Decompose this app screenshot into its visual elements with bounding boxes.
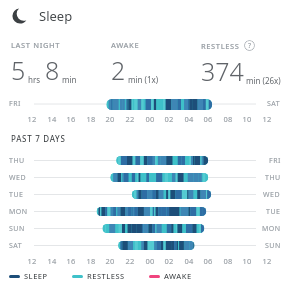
staticText: 2 bbox=[111, 53, 126, 87]
button[interactable]: SAT bbox=[0, 237, 290, 254]
staticText: FRI bbox=[269, 156, 281, 166]
staticText: TUE bbox=[9, 190, 24, 200]
staticText: 08 bbox=[223, 256, 233, 266]
staticText: 20 bbox=[105, 114, 115, 124]
staticText: 5 bbox=[11, 53, 26, 87]
staticText: AWAKE bbox=[111, 40, 140, 50]
staticText: 10 bbox=[242, 114, 252, 124]
button[interactable]: WED bbox=[0, 169, 290, 186]
staticText: 8 bbox=[45, 53, 60, 87]
staticText: 22 bbox=[125, 256, 135, 266]
button[interactable]: SLEEP bbox=[9, 271, 48, 281]
staticText: TUE bbox=[266, 207, 281, 217]
staticText: min (26x) bbox=[246, 75, 281, 86]
staticText: min bbox=[62, 74, 77, 85]
button[interactable]: FRI bbox=[0, 96, 290, 112]
staticText: 16 bbox=[66, 256, 76, 266]
button[interactable]: Sleep bbox=[0, 0, 290, 32]
staticText: 10 bbox=[242, 256, 252, 266]
staticText: PAST 7 DAYS bbox=[11, 133, 66, 144]
button[interactable]: THU bbox=[0, 152, 290, 169]
staticText: 08 bbox=[223, 114, 233, 124]
staticText: min (1x) bbox=[128, 74, 159, 85]
staticText: 00 bbox=[145, 114, 155, 124]
staticText: 374 bbox=[201, 54, 244, 88]
staticText: MON bbox=[262, 224, 281, 234]
staticText: 04 bbox=[184, 114, 194, 124]
staticText: SLEEP bbox=[24, 271, 48, 281]
staticText: 12 bbox=[27, 114, 37, 124]
staticText: AWAKE bbox=[164, 271, 192, 281]
staticText: FRI bbox=[9, 99, 21, 109]
staticText: THU bbox=[9, 156, 25, 166]
staticText: 18 bbox=[86, 256, 96, 266]
staticText: 06 bbox=[203, 256, 213, 266]
staticText: 14 bbox=[47, 256, 57, 266]
staticText: 16 bbox=[66, 114, 76, 124]
button[interactable]: MON bbox=[0, 203, 290, 220]
staticText: LAST NIGHT bbox=[11, 40, 60, 50]
other: Sleep bbox=[11, 7, 29, 25]
staticText: 02 bbox=[164, 114, 174, 124]
staticText: Sleep bbox=[39, 7, 73, 25]
staticText: 12 bbox=[262, 256, 272, 266]
staticText: WED bbox=[263, 190, 281, 200]
staticText: 14 bbox=[47, 114, 57, 124]
staticText: SUN bbox=[265, 241, 281, 251]
staticText: RESTLESS bbox=[201, 41, 240, 51]
button[interactable]: TUE bbox=[0, 186, 290, 203]
staticText: SAT bbox=[267, 99, 281, 109]
staticText: 02 bbox=[164, 256, 174, 266]
staticText: 20 bbox=[105, 256, 115, 266]
button[interactable]: RESTLESS bbox=[72, 271, 125, 281]
button[interactable]: What is restless? bbox=[244, 40, 255, 51]
staticText: SUN bbox=[9, 224, 25, 234]
staticText: 06 bbox=[203, 114, 213, 124]
staticText: SAT bbox=[9, 241, 23, 251]
staticText: WED bbox=[9, 173, 27, 183]
staticText: 12 bbox=[262, 114, 272, 124]
staticText: hrs bbox=[28, 74, 41, 85]
staticText: 18 bbox=[86, 114, 96, 124]
staticText: 00 bbox=[145, 256, 155, 266]
staticText: MON bbox=[9, 207, 28, 217]
staticText: 04 bbox=[184, 256, 194, 266]
button[interactable]: AWAKE bbox=[149, 271, 192, 281]
staticText: ? bbox=[248, 41, 252, 51]
staticText: RESTLESS bbox=[87, 271, 125, 281]
button[interactable]: SUN bbox=[0, 220, 290, 237]
staticText: 12 bbox=[27, 256, 37, 266]
staticText: THU bbox=[265, 173, 281, 183]
staticText: 22 bbox=[125, 114, 135, 124]
